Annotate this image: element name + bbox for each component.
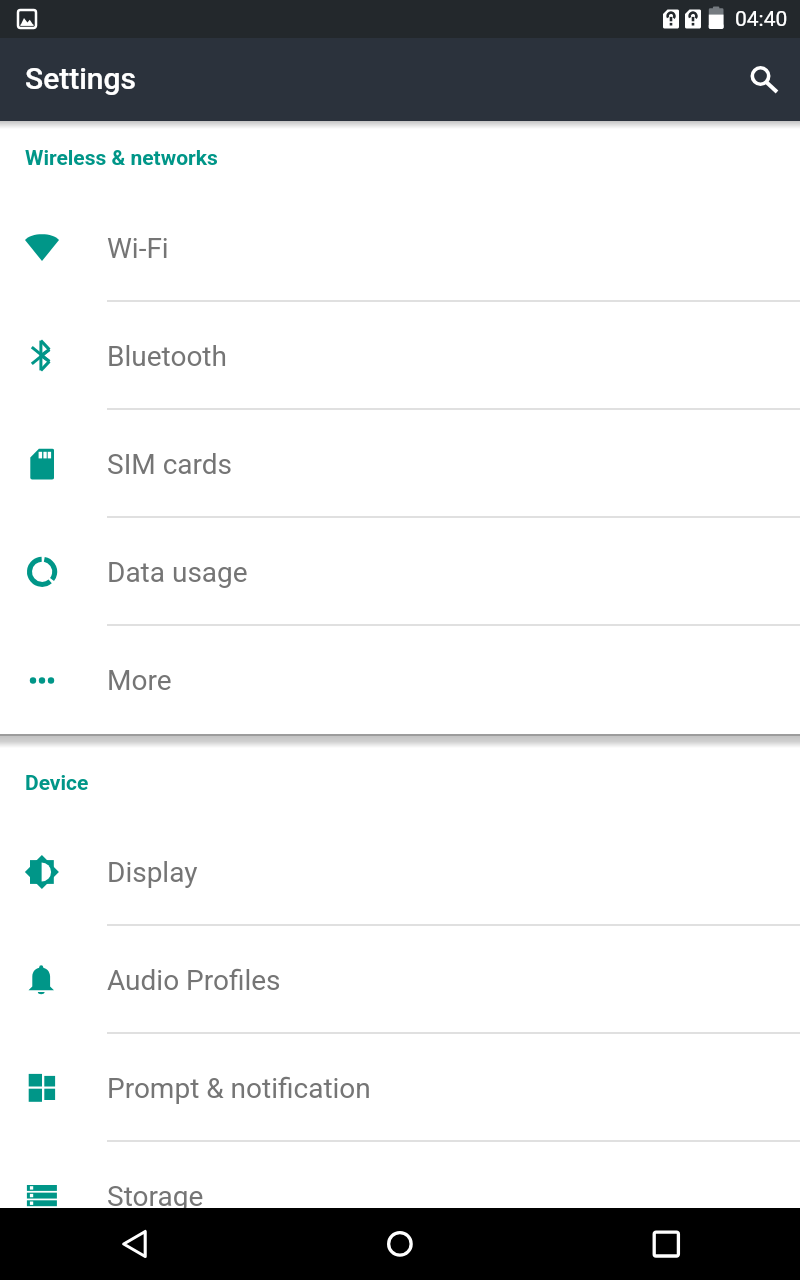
staticText: Bluetooth <box>107 340 227 373</box>
button[interactable]: Recents <box>533 1208 800 1280</box>
button[interactable]: Display <box>0 818 800 926</box>
staticText: 04:40 <box>735 7 788 32</box>
staticText: Display <box>107 856 198 889</box>
staticText: Device <box>25 771 89 796</box>
button[interactable]: Storage <box>0 1142 800 1250</box>
staticText: Settings <box>25 61 137 96</box>
staticText: Data usage <box>107 556 248 589</box>
button[interactable]: SIM cards <box>0 410 800 518</box>
button[interactable]: Bluetooth <box>0 302 800 410</box>
button[interactable]: Wi-Fi <box>0 194 800 302</box>
button[interactable]: More <box>0 626 800 734</box>
button[interactable]: Prompt & notification <box>0 1034 800 1142</box>
staticText: Prompt & notification <box>107 1072 371 1105</box>
button[interactable]: Data usage <box>0 518 800 626</box>
staticText: Wireless & networks <box>25 146 218 171</box>
staticText: More <box>107 664 172 697</box>
staticText: Wi-Fi <box>107 232 169 265</box>
button[interactable]: Search <box>732 51 789 108</box>
staticText: Storage <box>107 1180 204 1213</box>
button[interactable]: Home <box>266 1208 533 1280</box>
button[interactable]: Audio Profiles <box>0 926 800 1034</box>
staticText: Audio Profiles <box>107 964 281 997</box>
staticText: SIM cards <box>107 448 232 481</box>
button[interactable]: Back <box>0 1208 266 1280</box>
